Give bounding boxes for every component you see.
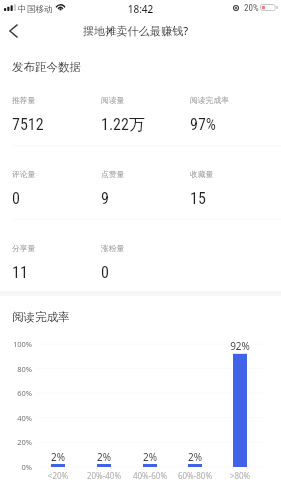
staticText: 0	[12, 189, 20, 208]
button[interactable]: 推荐量	[12, 95, 101, 134]
staticText: 评论量	[12, 169, 36, 179]
staticText: 60%	[4, 388, 32, 398]
staticText: 涨粉量	[101, 243, 125, 253]
staticText: 收藏量	[190, 169, 214, 179]
staticText: 发布距今数据	[12, 60, 81, 74]
staticText: 分享量	[12, 243, 36, 253]
button[interactable]: 涨粉量	[101, 243, 190, 282]
staticText: 40%-60%	[126, 470, 174, 481]
staticText: 中国移动	[18, 4, 53, 15]
staticText: 92%	[216, 339, 264, 353]
staticText: 2%	[126, 450, 174, 464]
staticText: 摆地摊卖什么最赚钱?	[0, 23, 276, 38]
staticText: 1.22万	[101, 115, 145, 135]
staticText: 2%	[171, 450, 219, 464]
button[interactable]: 分享量	[12, 243, 101, 282]
button[interactable]: Back	[0, 18, 26, 44]
staticText: 40%	[4, 413, 32, 423]
staticText: 0	[101, 263, 109, 282]
button[interactable]: 阅读量	[101, 95, 190, 135]
staticText: 阅读量	[101, 95, 125, 105]
staticText: 100%	[4, 339, 32, 349]
staticText: 11	[12, 263, 28, 282]
staticText: 阅读完成率	[190, 95, 229, 105]
staticText: 80%	[4, 364, 32, 374]
staticText: <20%	[34, 470, 82, 481]
staticText: 推荐量	[12, 95, 36, 105]
staticText: >80%	[216, 470, 264, 481]
staticText: 60%-80%	[171, 470, 219, 481]
button[interactable]: 收藏量	[190, 169, 279, 208]
staticText: 15	[190, 189, 206, 208]
staticText: 9	[101, 189, 109, 208]
button[interactable]: 点赞量	[101, 169, 190, 208]
button[interactable]: 评论量	[12, 169, 101, 208]
staticText: 20%-40%	[80, 470, 128, 481]
staticText: 2%	[34, 450, 82, 464]
staticText: 点赞量	[101, 169, 125, 179]
staticText: 2%	[80, 450, 128, 464]
staticText: 0%	[4, 462, 32, 472]
staticText: 18:42	[113, 2, 168, 16]
staticText: 97%	[190, 115, 216, 134]
staticText: 20%	[244, 3, 259, 14]
staticText: 阅读完成率	[12, 310, 70, 324]
staticText: 7512	[12, 115, 44, 134]
staticText: 20%	[4, 437, 32, 447]
button[interactable]: 阅读完成率	[190, 95, 279, 134]
